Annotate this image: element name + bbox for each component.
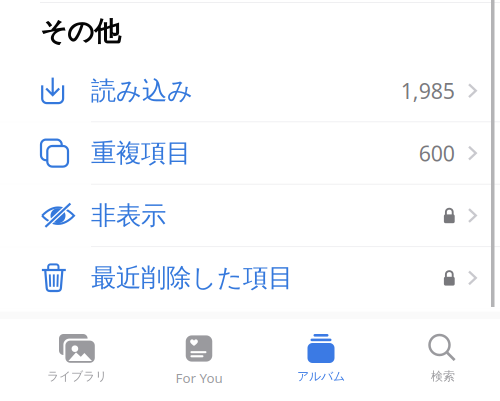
button[interactable]: 重複項目	[0, 122, 500, 184]
staticText: 非表示	[91, 200, 166, 231]
staticText: その他	[40, 15, 121, 48]
button[interactable]: 最近削除した項目	[0, 247, 500, 309]
staticText: 読み込み	[91, 75, 193, 106]
staticText: 重複項目	[91, 137, 191, 169]
button[interactable]: アルバム	[260, 334, 382, 401]
button[interactable]: 読み込み	[0, 60, 500, 121]
staticText: 検索	[431, 369, 455, 384]
button[interactable]: For You	[138, 334, 260, 401]
button[interactable]: ライブラリ	[16, 334, 138, 401]
staticText: 600	[419, 139, 455, 167]
staticText: For You	[175, 369, 222, 387]
button[interactable]: 非表示	[0, 185, 500, 246]
staticText: 1,985	[401, 76, 455, 105]
staticText: 最近削除した項目	[91, 262, 293, 293]
staticText: アルバム	[297, 369, 345, 384]
staticText: ライブラリ	[47, 369, 107, 384]
button[interactable]: 検索	[382, 334, 500, 401]
